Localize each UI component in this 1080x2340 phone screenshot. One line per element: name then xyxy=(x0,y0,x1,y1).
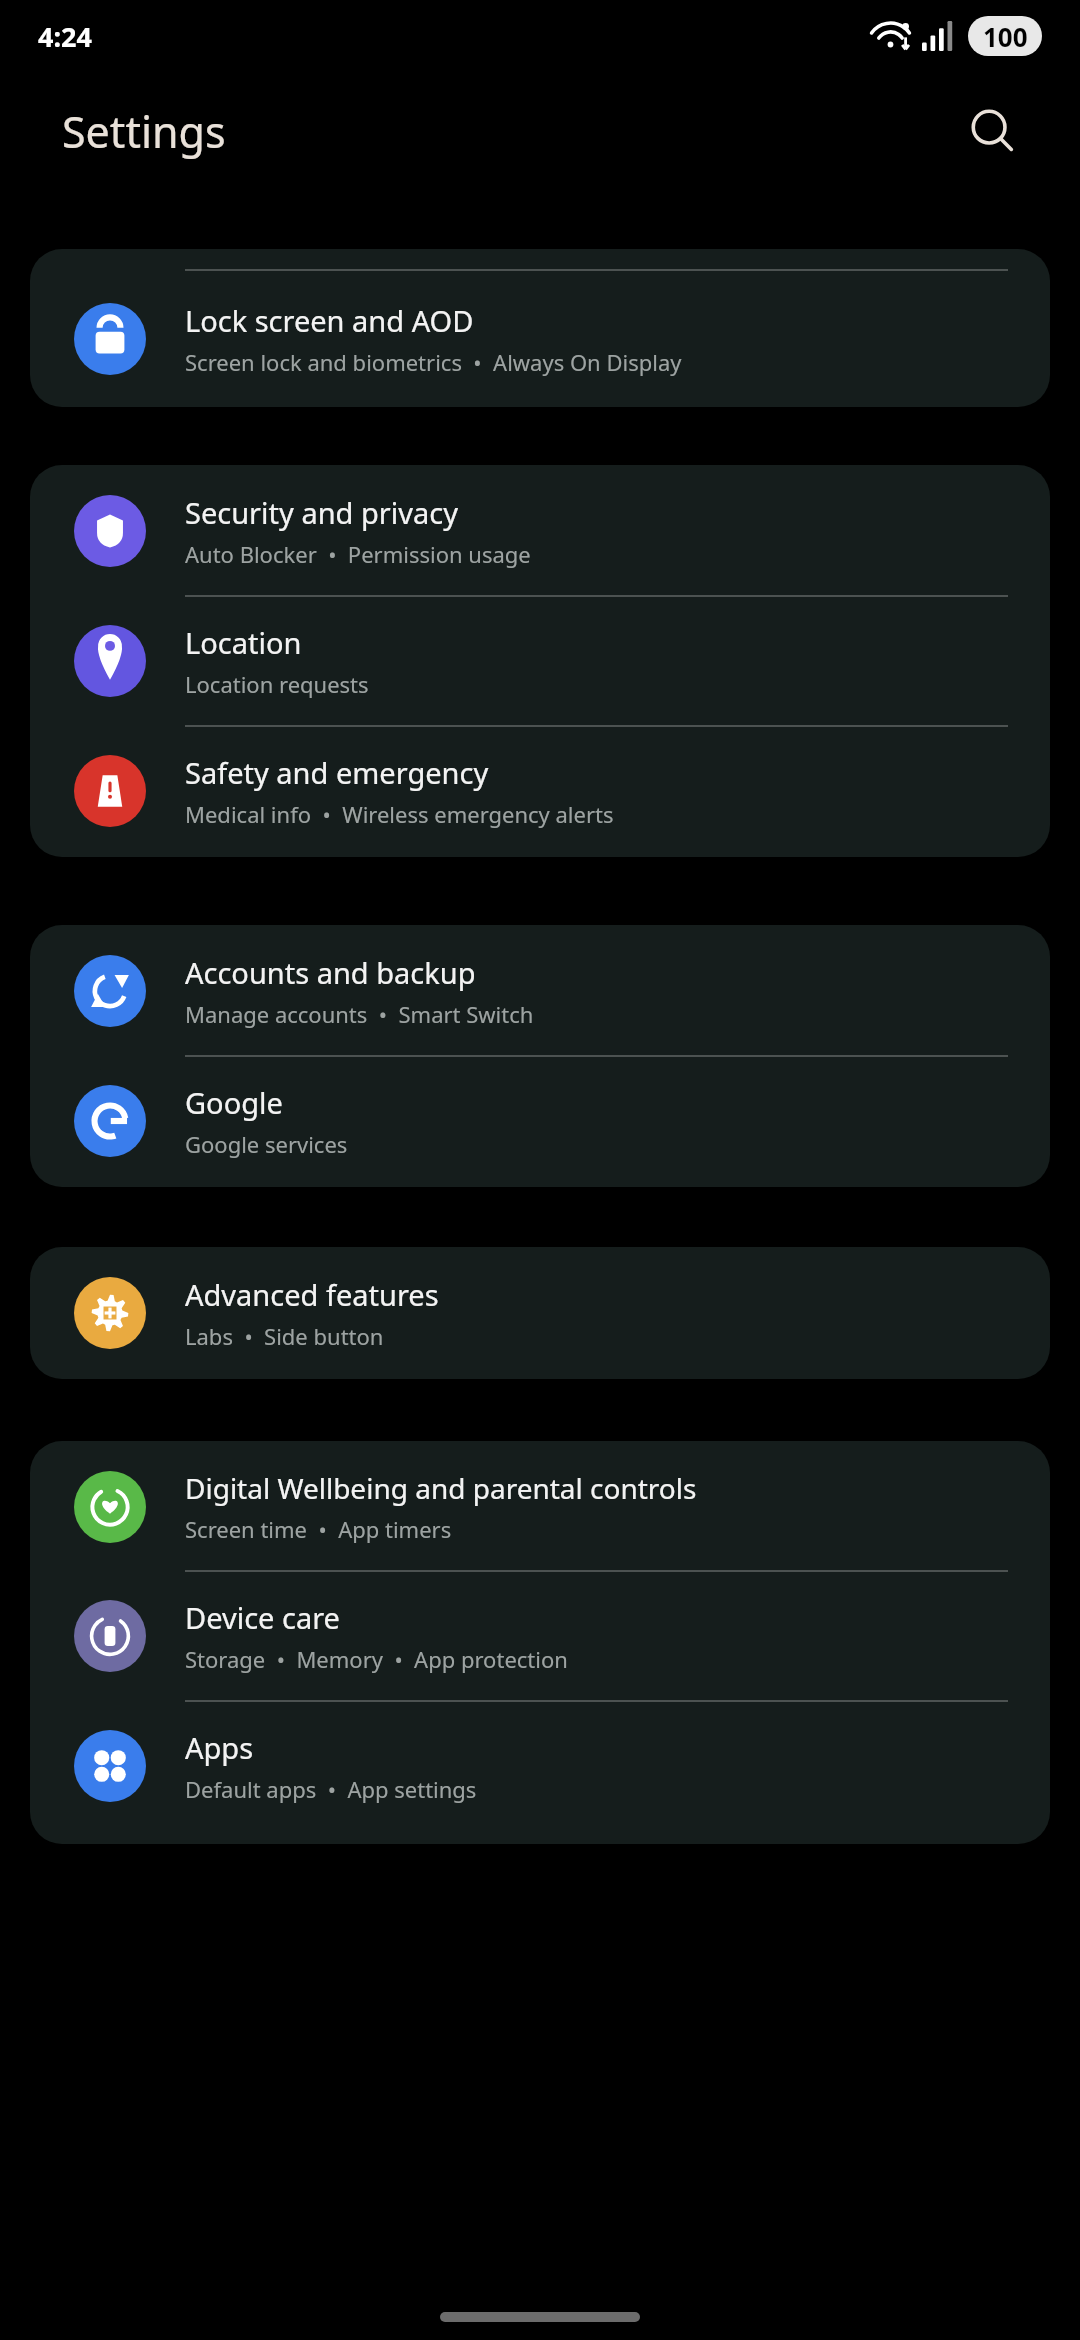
staticText: Google xyxy=(185,1083,283,1122)
staticText: Location xyxy=(185,623,302,662)
staticText: Location requests xyxy=(185,669,369,699)
staticText: Labs • Side button xyxy=(185,1321,384,1351)
button[interactable]: Security and privacy xyxy=(30,465,1050,595)
staticText: Screen time • App timers xyxy=(185,1514,452,1544)
button[interactable]: Google xyxy=(30,1057,1050,1187)
button[interactable]: Search settings xyxy=(956,95,1028,167)
staticText: Device care xyxy=(185,1598,340,1637)
staticText: Screen lock and biometrics • Always On D… xyxy=(185,347,682,377)
button[interactable]: Safety and emergency xyxy=(30,727,1050,857)
staticText: Apps xyxy=(185,1728,254,1767)
button[interactable]: Location xyxy=(30,597,1050,725)
staticText: Storage • Memory • App protection xyxy=(185,1644,568,1674)
button[interactable]: Digital Wellbeing and parental controls xyxy=(30,1441,1050,1570)
staticText: Security and privacy xyxy=(185,493,458,532)
button[interactable]: Accounts and backup xyxy=(30,925,1050,1055)
staticText: Digital Wellbeing and parental controls xyxy=(185,1469,697,1507)
staticText: 4:24 xyxy=(38,18,92,55)
staticText: Default apps • App settings xyxy=(185,1774,477,1804)
staticText: Safety and emergency xyxy=(185,753,489,792)
staticText: Manage accounts • Smart Switch xyxy=(185,999,534,1029)
button[interactable]: Apps xyxy=(30,1702,1050,1844)
staticText: 100 xyxy=(983,19,1028,54)
staticText: Medical info • Wireless emergency alerts xyxy=(185,799,614,829)
button[interactable]: Lock screen and AOD xyxy=(30,271,1050,407)
button[interactable]: Device care xyxy=(30,1572,1050,1700)
button[interactable]: Advanced features xyxy=(30,1247,1050,1379)
staticText: Google services xyxy=(185,1129,348,1159)
staticText: Accounts and backup xyxy=(185,953,476,992)
staticText: Lock screen and AOD xyxy=(185,301,474,340)
staticText: Advanced features xyxy=(185,1275,439,1314)
staticText: Settings xyxy=(62,102,226,161)
staticText: Auto Blocker • Permission usage xyxy=(185,539,531,569)
